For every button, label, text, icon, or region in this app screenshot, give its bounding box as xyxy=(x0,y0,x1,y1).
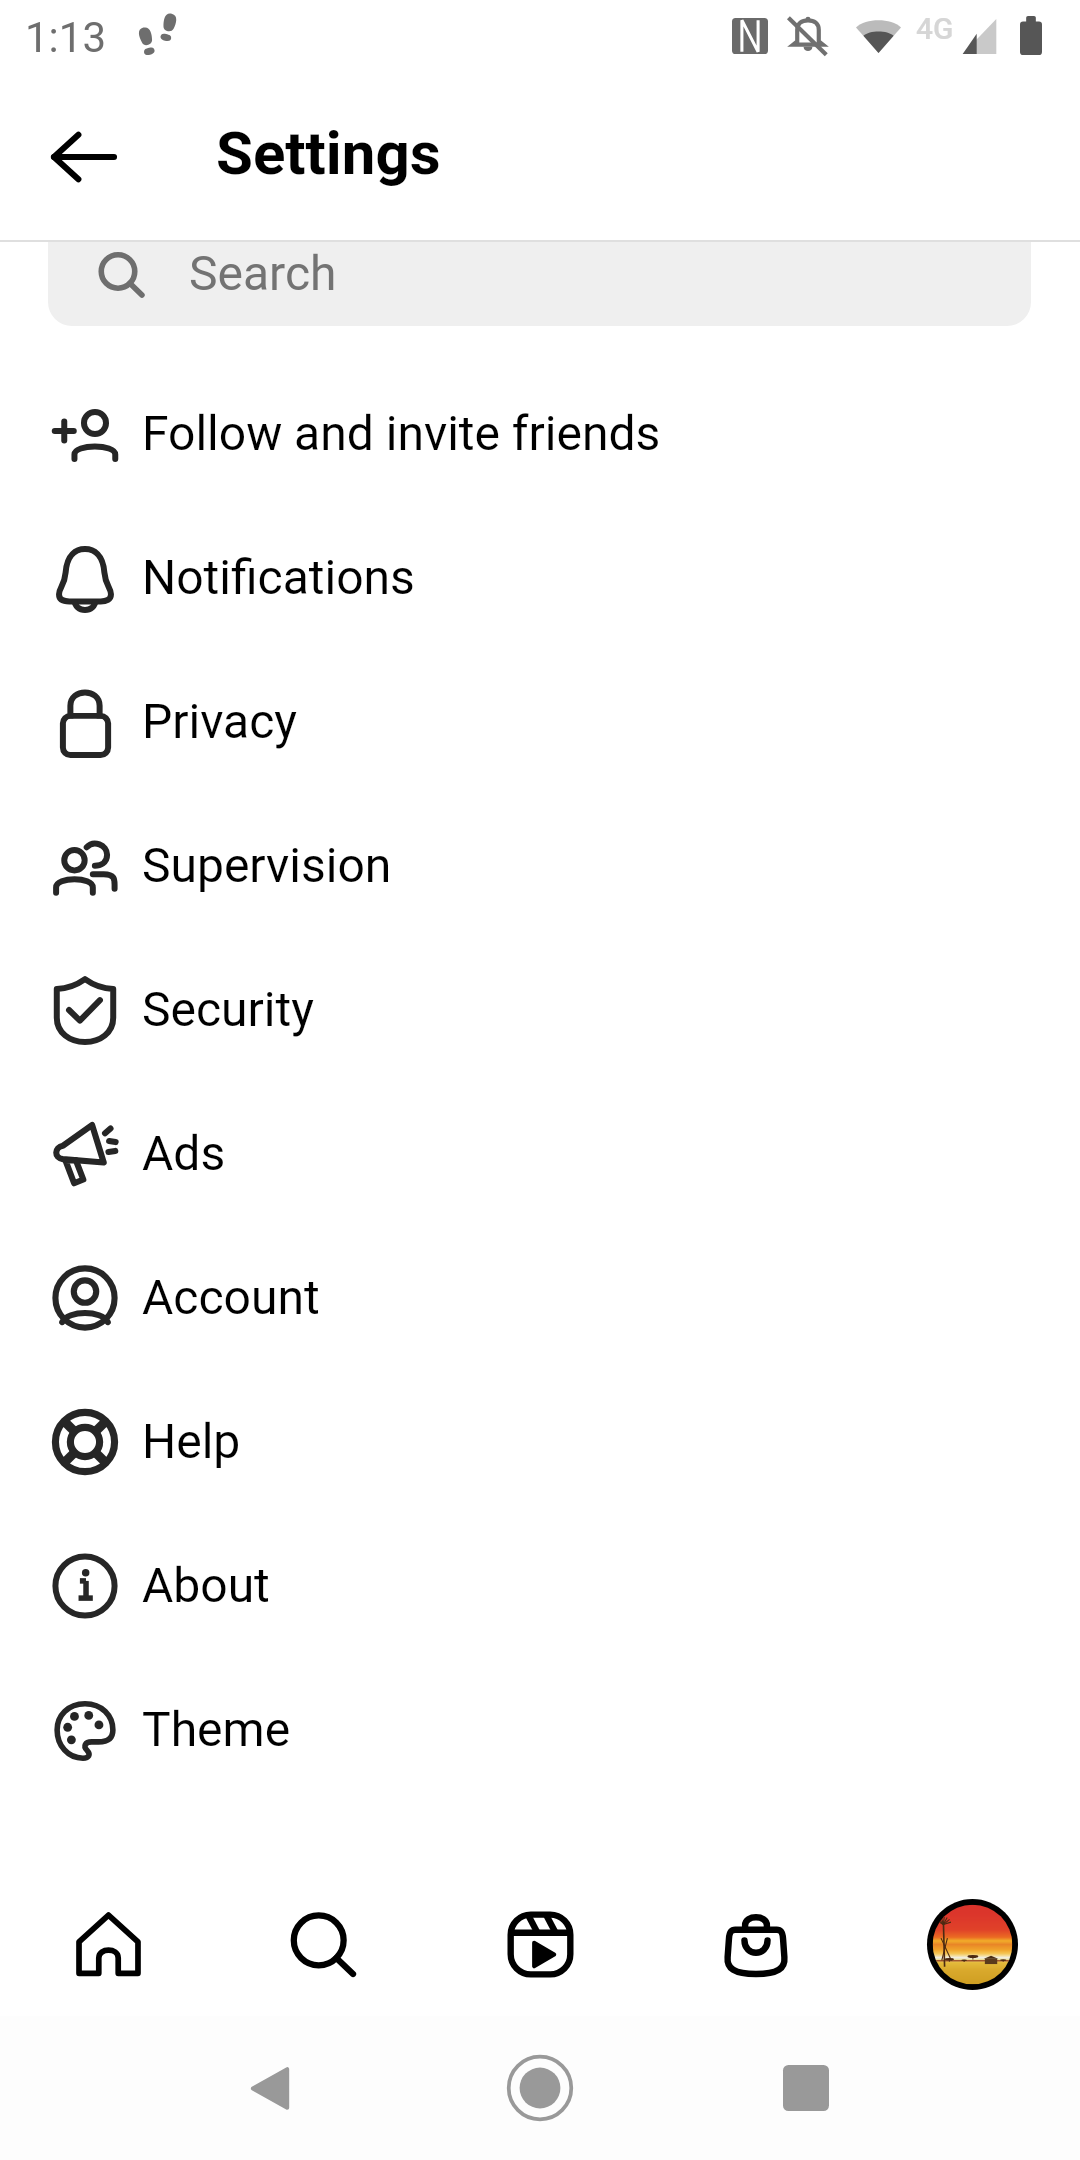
button[interactable]: About xyxy=(0,1514,1080,1658)
button[interactable]: Home xyxy=(486,2016,594,2160)
button[interactable]: Back xyxy=(216,2016,324,2160)
staticText: Account xyxy=(142,1269,320,1325)
staticText: Notifications xyxy=(142,549,415,605)
staticText: About xyxy=(142,1557,270,1613)
button[interactable]: Back xyxy=(37,110,131,204)
button[interactable]: Reels xyxy=(432,1856,648,2016)
button[interactable]: Search xyxy=(216,1856,432,2016)
button[interactable]: Privacy xyxy=(0,650,1080,794)
staticText: Theme xyxy=(142,1701,291,1757)
button[interactable]: Follow and invite friends xyxy=(0,362,1080,506)
staticText: 4G xyxy=(916,11,954,46)
staticText: Ads xyxy=(142,1125,226,1181)
staticText: Help xyxy=(142,1413,241,1469)
button[interactable]: Shop xyxy=(648,1856,864,2016)
staticText: Supervision xyxy=(142,837,392,893)
button[interactable]: Theme xyxy=(0,1658,1080,1802)
button[interactable]: Ads xyxy=(0,1082,1080,1226)
staticText: Follow and invite friends xyxy=(142,405,661,461)
button[interactable]: Notifications xyxy=(0,506,1080,650)
button[interactable]: Search xyxy=(48,241,1031,326)
button[interactable]: Account xyxy=(0,1226,1080,1370)
staticText: Search xyxy=(189,245,337,301)
button[interactable]: Supervision xyxy=(0,794,1080,938)
button[interactable]: Home xyxy=(0,1856,216,2016)
button[interactable]: Profile xyxy=(864,1856,1080,2016)
staticText: Settings xyxy=(216,118,441,188)
button[interactable]: Security xyxy=(0,938,1080,1082)
button[interactable]: Help xyxy=(0,1370,1080,1514)
button[interactable]: Recent apps xyxy=(752,2016,860,2160)
staticText: Security xyxy=(142,981,314,1037)
staticText: 1:13 xyxy=(25,13,106,62)
staticText: Privacy xyxy=(142,693,298,749)
